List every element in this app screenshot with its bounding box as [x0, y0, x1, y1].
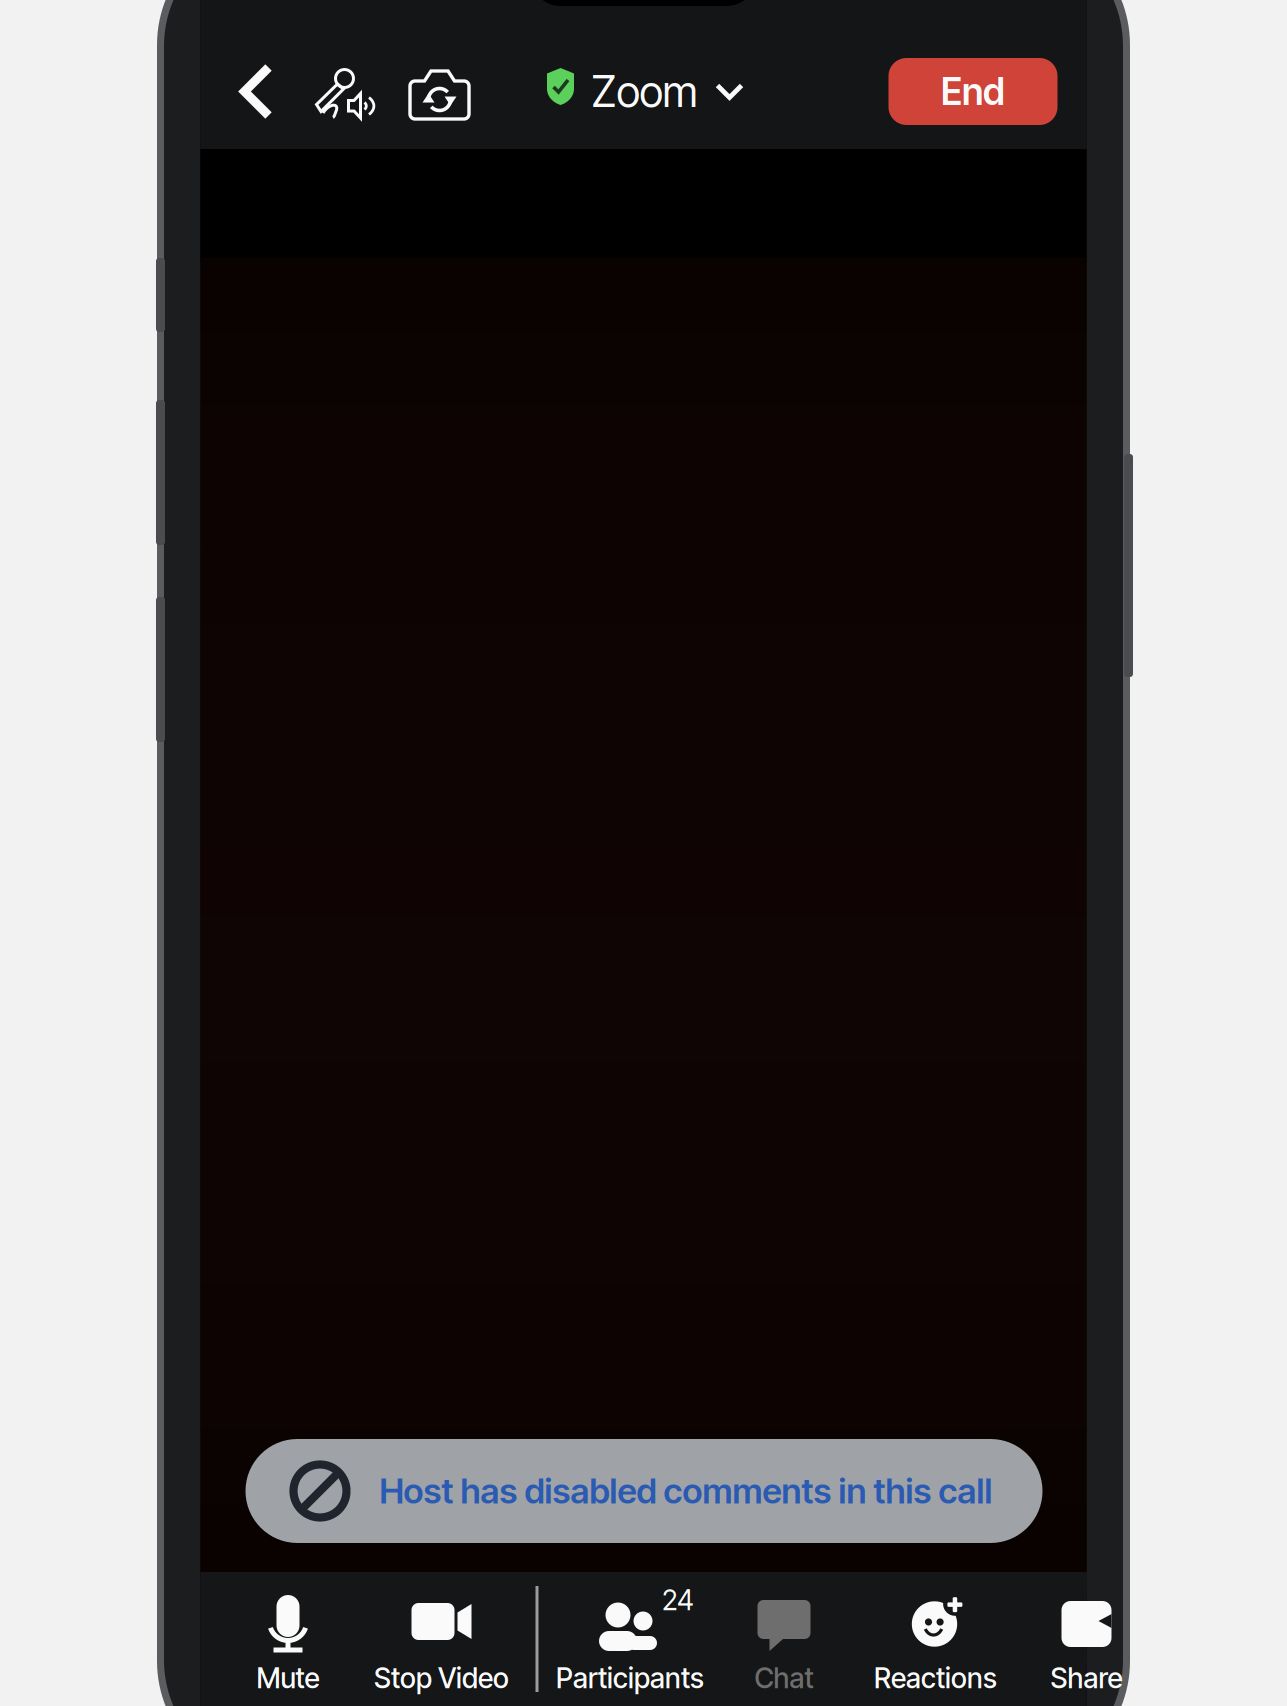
button[interactable]: End [888, 58, 1057, 125]
button[interactable]: Stop Video [350, 1572, 532, 1706]
button[interactable]: Share [1024, 1572, 1148, 1706]
button[interactable]: Mute [225, 1572, 350, 1706]
staticText: Share [1050, 1661, 1122, 1695]
staticText: Chat [754, 1661, 813, 1695]
button[interactable]: Switch camera [396, 46, 482, 136]
staticText: Mute [256, 1661, 319, 1695]
staticText: Stop Video [374, 1661, 509, 1695]
button[interactable]: Back [228, 46, 284, 136]
button[interactable]: Reactions [846, 1572, 1024, 1706]
staticText: End [941, 69, 1005, 114]
button[interactable]: 24 [538, 1572, 721, 1706]
staticText: 24 [662, 1583, 694, 1617]
button[interactable]: Audio settings [302, 46, 388, 136]
staticText: Zoom [591, 66, 697, 117]
button[interactable]: Chat [721, 1572, 846, 1706]
staticText: Participants [556, 1661, 704, 1695]
staticText: Host has disabled comments in this call [379, 1470, 992, 1512]
button[interactable]: Zoom [545, 46, 744, 136]
staticText: Reactions [874, 1661, 997, 1695]
